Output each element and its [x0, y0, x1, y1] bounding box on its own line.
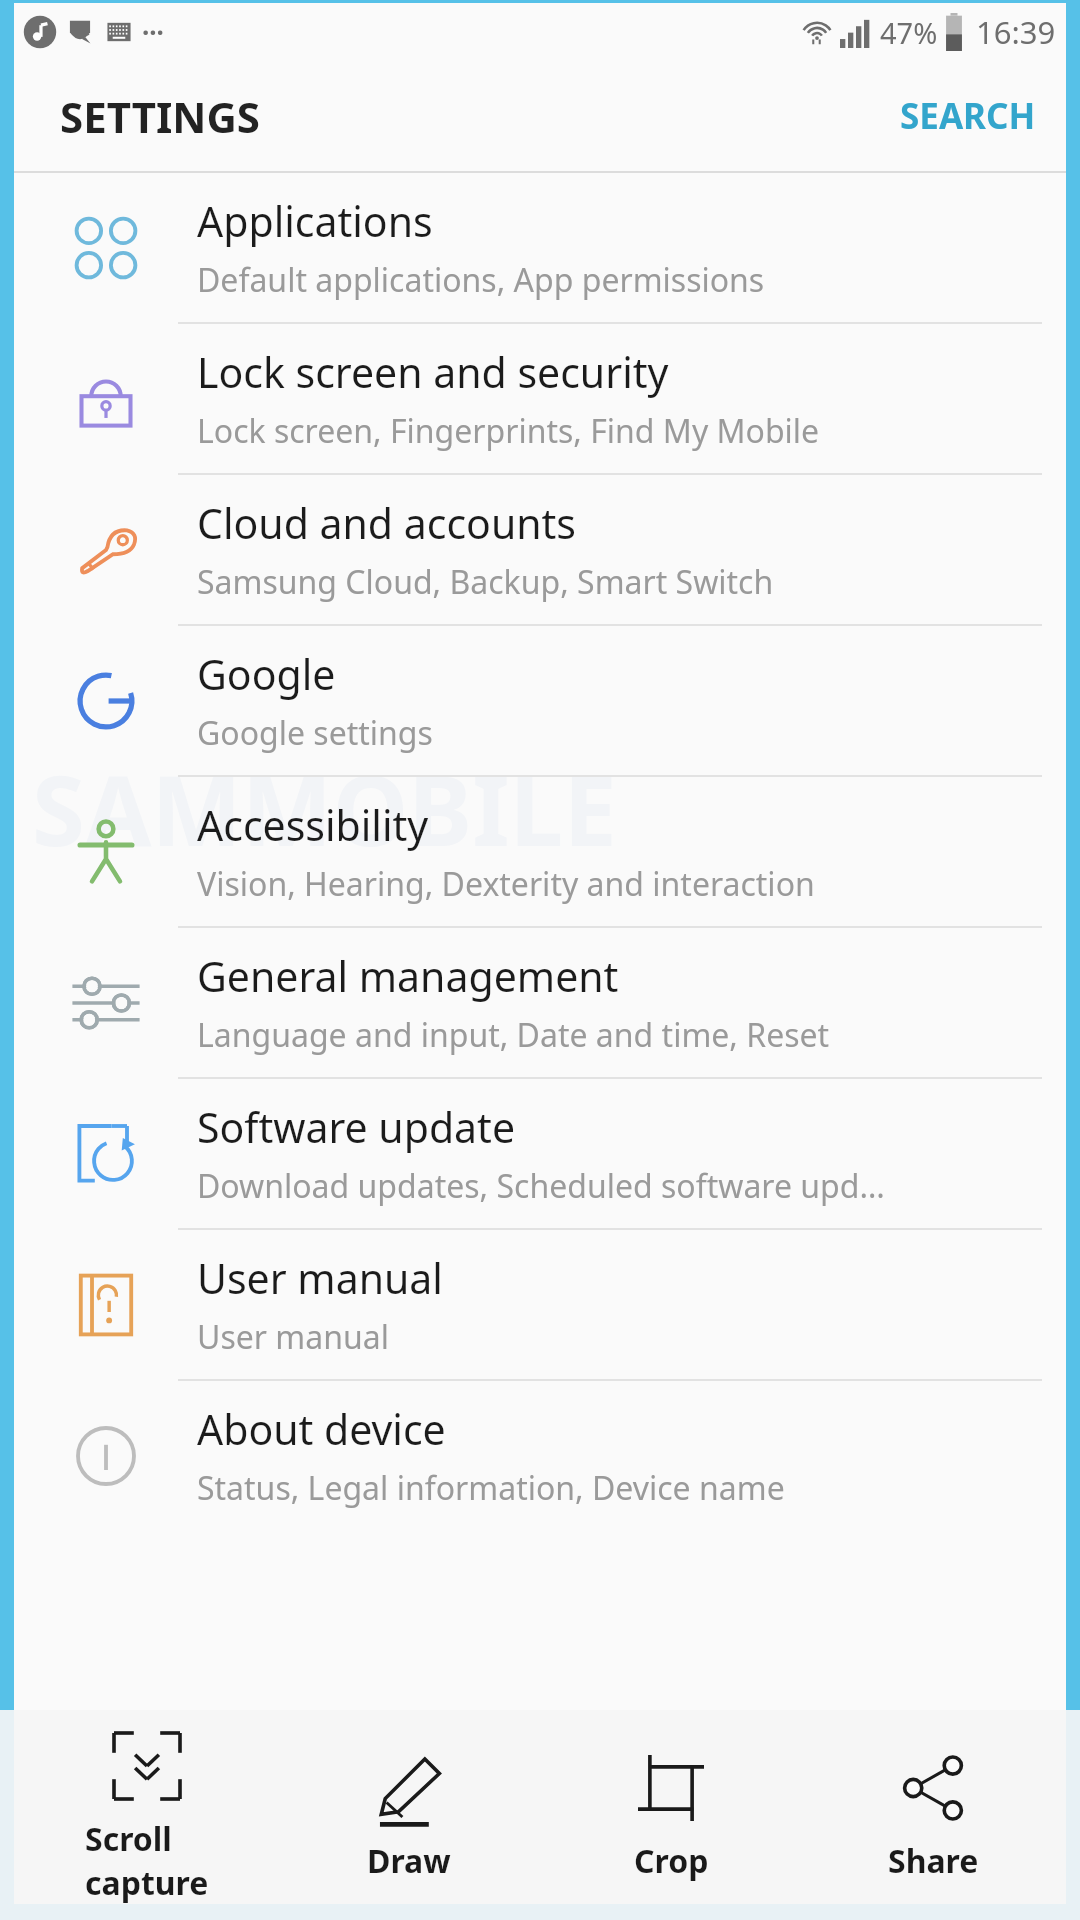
staticText: Default applications, App permissions — [197, 258, 765, 302]
staticText: ... — [142, 7, 164, 42]
button[interactable]: Share — [818, 1710, 1048, 1920]
button[interactable]: About device — [14, 1381, 1066, 1530]
staticText: Vision, Hearing, Dexterity and interacti… — [197, 862, 815, 906]
staticText: Lock screen, Fingerprints, Find My Mobil… — [197, 409, 820, 453]
staticText: Google — [197, 646, 336, 702]
button[interactable]: Applications — [14, 173, 1066, 322]
staticText: User manual — [197, 1250, 443, 1306]
button[interactable]: Crop — [556, 1710, 786, 1920]
button[interactable]: Cloud and accounts — [14, 475, 1066, 624]
staticText: Share — [888, 1839, 979, 1883]
staticText: 47% — [880, 13, 938, 52]
staticText: Crop — [634, 1839, 709, 1883]
staticText: Samsung Cloud, Backup, Smart Switch — [197, 560, 774, 604]
staticText: Lock screen and security — [197, 344, 669, 400]
staticText: Accessibility — [197, 797, 429, 853]
staticText: 16:39 — [976, 11, 1056, 53]
staticText: Scroll capture — [85, 1817, 209, 1905]
button[interactable]: Google — [14, 626, 1066, 775]
staticText: Cloud and accounts — [197, 495, 577, 551]
button[interactable]: Scroll capture — [32, 1710, 262, 1920]
staticText: User manual — [197, 1315, 389, 1359]
staticText: SETTINGS — [60, 88, 261, 145]
staticText: Software update — [197, 1099, 516, 1155]
staticText: SAMMOBILE — [32, 743, 617, 874]
staticText: General management — [197, 948, 619, 1004]
staticText: Applications — [197, 193, 433, 249]
button[interactable]: Draw — [294, 1710, 524, 1920]
button[interactable]: SEARCH — [870, 78, 1066, 154]
button[interactable]: General management — [14, 928, 1066, 1077]
staticText: Draw — [367, 1839, 451, 1883]
button[interactable]: Lock screen and security — [14, 324, 1066, 473]
staticText: Language and input, Date and time, Reset — [197, 1013, 830, 1057]
button[interactable]: User manual — [14, 1230, 1066, 1379]
staticText: About device — [197, 1401, 446, 1457]
staticText: Google settings — [197, 711, 433, 755]
staticText: SEARCH — [900, 92, 1036, 140]
button[interactable]: Accessibility — [14, 777, 1066, 926]
staticText: Status, Legal information, Device name — [197, 1466, 785, 1510]
staticText: Download updates, Scheduled software upd… — [197, 1164, 885, 1208]
button[interactable]: Software update — [14, 1079, 1066, 1228]
